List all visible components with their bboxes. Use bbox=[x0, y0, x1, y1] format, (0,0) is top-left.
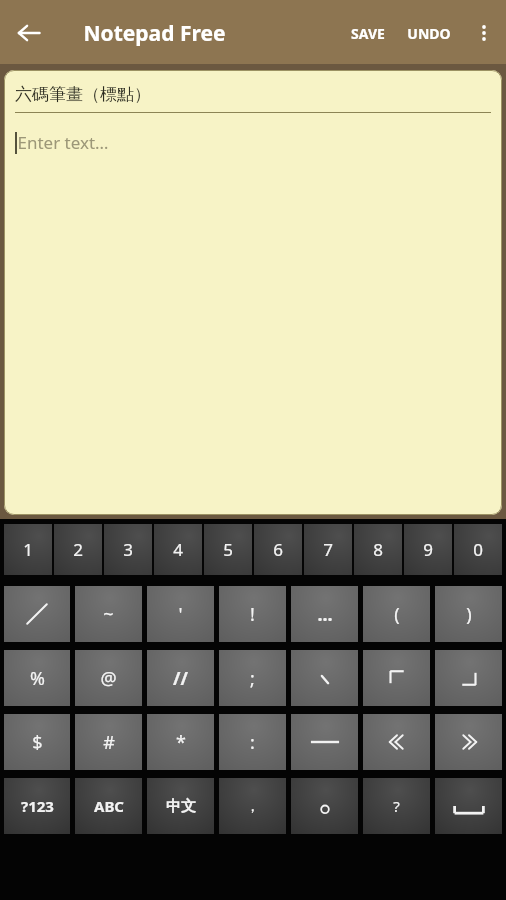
button[interactable]: 6 bbox=[254, 524, 302, 575]
button[interactable]: ~ bbox=[75, 586, 142, 642]
button[interactable] bbox=[363, 714, 430, 770]
staticText: ?123 bbox=[21, 796, 54, 816]
button[interactable]: ， bbox=[219, 778, 286, 834]
staticText: % bbox=[30, 666, 45, 691]
button[interactable]: ?123 bbox=[4, 778, 70, 834]
button[interactable] bbox=[291, 714, 358, 770]
staticText: ， bbox=[245, 797, 260, 816]
staticText: 5 bbox=[223, 538, 233, 561]
button[interactable] bbox=[4, 586, 70, 642]
button[interactable]: UNDO bbox=[396, 0, 462, 66]
staticText: 2 bbox=[73, 538, 83, 561]
button[interactable]: 1 bbox=[4, 524, 52, 575]
button[interactable]: ' bbox=[147, 586, 214, 642]
staticText: $ bbox=[32, 730, 43, 755]
button[interactable]: More options bbox=[462, 0, 506, 66]
staticText: 中文 bbox=[166, 797, 196, 816]
staticText: Notepad Free bbox=[83, 19, 226, 48]
button[interactable]: # bbox=[75, 714, 142, 770]
button[interactable]: @ bbox=[75, 650, 142, 706]
button[interactable]: 2 bbox=[54, 524, 102, 575]
button[interactable]: $ bbox=[4, 714, 70, 770]
button[interactable]: ; bbox=[219, 650, 286, 706]
staticText: ( bbox=[394, 602, 400, 627]
staticText: ! bbox=[250, 602, 255, 627]
staticText: 6 bbox=[273, 538, 283, 561]
staticText: ? bbox=[393, 796, 400, 816]
staticText: 4 bbox=[173, 538, 183, 561]
staticText: @ bbox=[100, 666, 117, 691]
button[interactable]: % bbox=[4, 650, 70, 706]
button[interactable]: // bbox=[147, 650, 214, 706]
button[interactable]: ) bbox=[435, 586, 502, 642]
staticText: 7 bbox=[323, 538, 333, 561]
button[interactable]: ABC bbox=[75, 778, 142, 834]
button[interactable] bbox=[435, 778, 502, 834]
staticText: 六碼筆畫（標點） bbox=[15, 84, 151, 105]
button[interactable]: 4 bbox=[154, 524, 202, 575]
staticText: 9 bbox=[423, 538, 433, 561]
staticText: ~ bbox=[103, 602, 114, 627]
staticText: : bbox=[250, 730, 255, 755]
button[interactable]: 3 bbox=[104, 524, 152, 575]
staticText: ... bbox=[317, 602, 333, 627]
staticText: // bbox=[173, 666, 188, 691]
staticText: # bbox=[103, 730, 115, 755]
button[interactable]: Back bbox=[0, 4, 58, 62]
staticText: UNDO bbox=[407, 24, 451, 43]
staticText: ) bbox=[466, 602, 472, 627]
button[interactable]: : bbox=[219, 714, 286, 770]
button[interactable]: ! bbox=[219, 586, 286, 642]
button[interactable]: * bbox=[147, 714, 214, 770]
button[interactable] bbox=[435, 714, 502, 770]
button[interactable]: 六碼筆畫（標點） bbox=[4, 70, 502, 515]
button[interactable]: 8 bbox=[354, 524, 402, 575]
button[interactable]: 0 bbox=[454, 524, 502, 575]
staticText: ' bbox=[178, 602, 183, 627]
button[interactable] bbox=[291, 778, 358, 834]
button[interactable]: SAVE bbox=[340, 0, 396, 66]
staticText: Enter text… bbox=[17, 131, 109, 154]
staticText: * bbox=[176, 730, 186, 755]
button[interactable] bbox=[363, 650, 430, 706]
staticText: 3 bbox=[123, 538, 133, 561]
button[interactable]: ... bbox=[291, 586, 358, 642]
staticText: ; bbox=[250, 666, 255, 691]
staticText: ABC bbox=[94, 796, 124, 816]
button[interactable]: 中文 bbox=[147, 778, 214, 834]
button[interactable] bbox=[291, 650, 358, 706]
button[interactable]: 5 bbox=[204, 524, 252, 575]
button[interactable] bbox=[435, 650, 502, 706]
button[interactable]: ( bbox=[363, 586, 430, 642]
button[interactable]: ? bbox=[363, 778, 430, 834]
staticText: 1 bbox=[23, 538, 33, 561]
staticText: 0 bbox=[473, 538, 483, 561]
staticText: SAVE bbox=[351, 24, 385, 43]
button[interactable]: 9 bbox=[404, 524, 452, 575]
staticText: 8 bbox=[373, 538, 383, 561]
button[interactable]: 7 bbox=[304, 524, 352, 575]
